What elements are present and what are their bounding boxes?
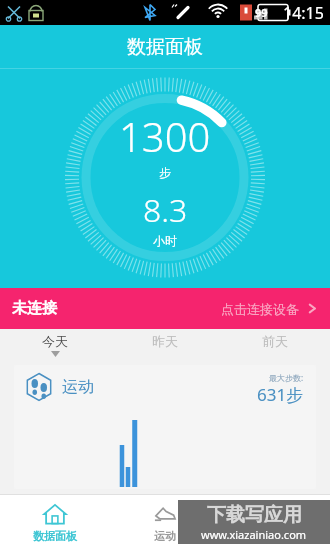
button[interactable]: 昨天 xyxy=(110,329,220,361)
staticText: 前天 xyxy=(262,333,288,349)
staticText: 运动 xyxy=(154,529,176,543)
staticText: 昨天 xyxy=(152,333,178,349)
staticText: 运动 xyxy=(62,377,94,397)
staticText: 99 xyxy=(255,5,268,20)
button[interactable]: 运动 xyxy=(110,494,220,550)
staticText: 数据面板 xyxy=(127,35,203,59)
staticText: 步 xyxy=(159,165,171,180)
button[interactable]: 运动 xyxy=(14,365,316,489)
staticText: 未连接 xyxy=(12,299,57,318)
staticText: 今天 xyxy=(42,333,68,349)
button[interactable]: 未连接 xyxy=(0,288,330,329)
button[interactable]: 数据面板 xyxy=(0,494,110,550)
staticText: 小时 xyxy=(153,233,177,248)
staticText: 8.3 xyxy=(143,188,188,232)
staticText: 点击连接设备 xyxy=(221,301,299,317)
button[interactable]: 前天 xyxy=(220,329,330,361)
staticText: 下载写应用 xyxy=(207,503,302,527)
staticText: 1300 xyxy=(119,109,211,163)
button[interactable]: 今天 xyxy=(0,329,110,361)
staticText: 631步 xyxy=(257,383,304,406)
staticText: www.xiazainiao.com xyxy=(201,527,307,542)
staticText: 最大步数: xyxy=(269,372,304,383)
staticText: 14:15 xyxy=(283,2,324,24)
staticText: 数据面板 xyxy=(33,529,77,543)
